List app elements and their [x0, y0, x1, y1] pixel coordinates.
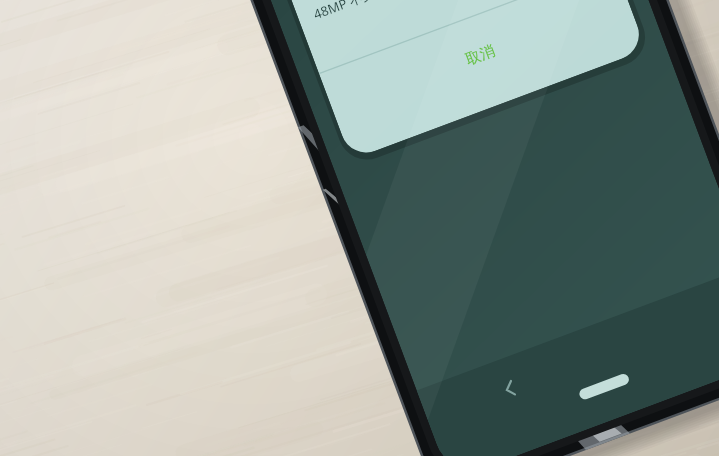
- button[interactable]: Photo of phone showing camera resolution…: [0, 0, 719, 456]
